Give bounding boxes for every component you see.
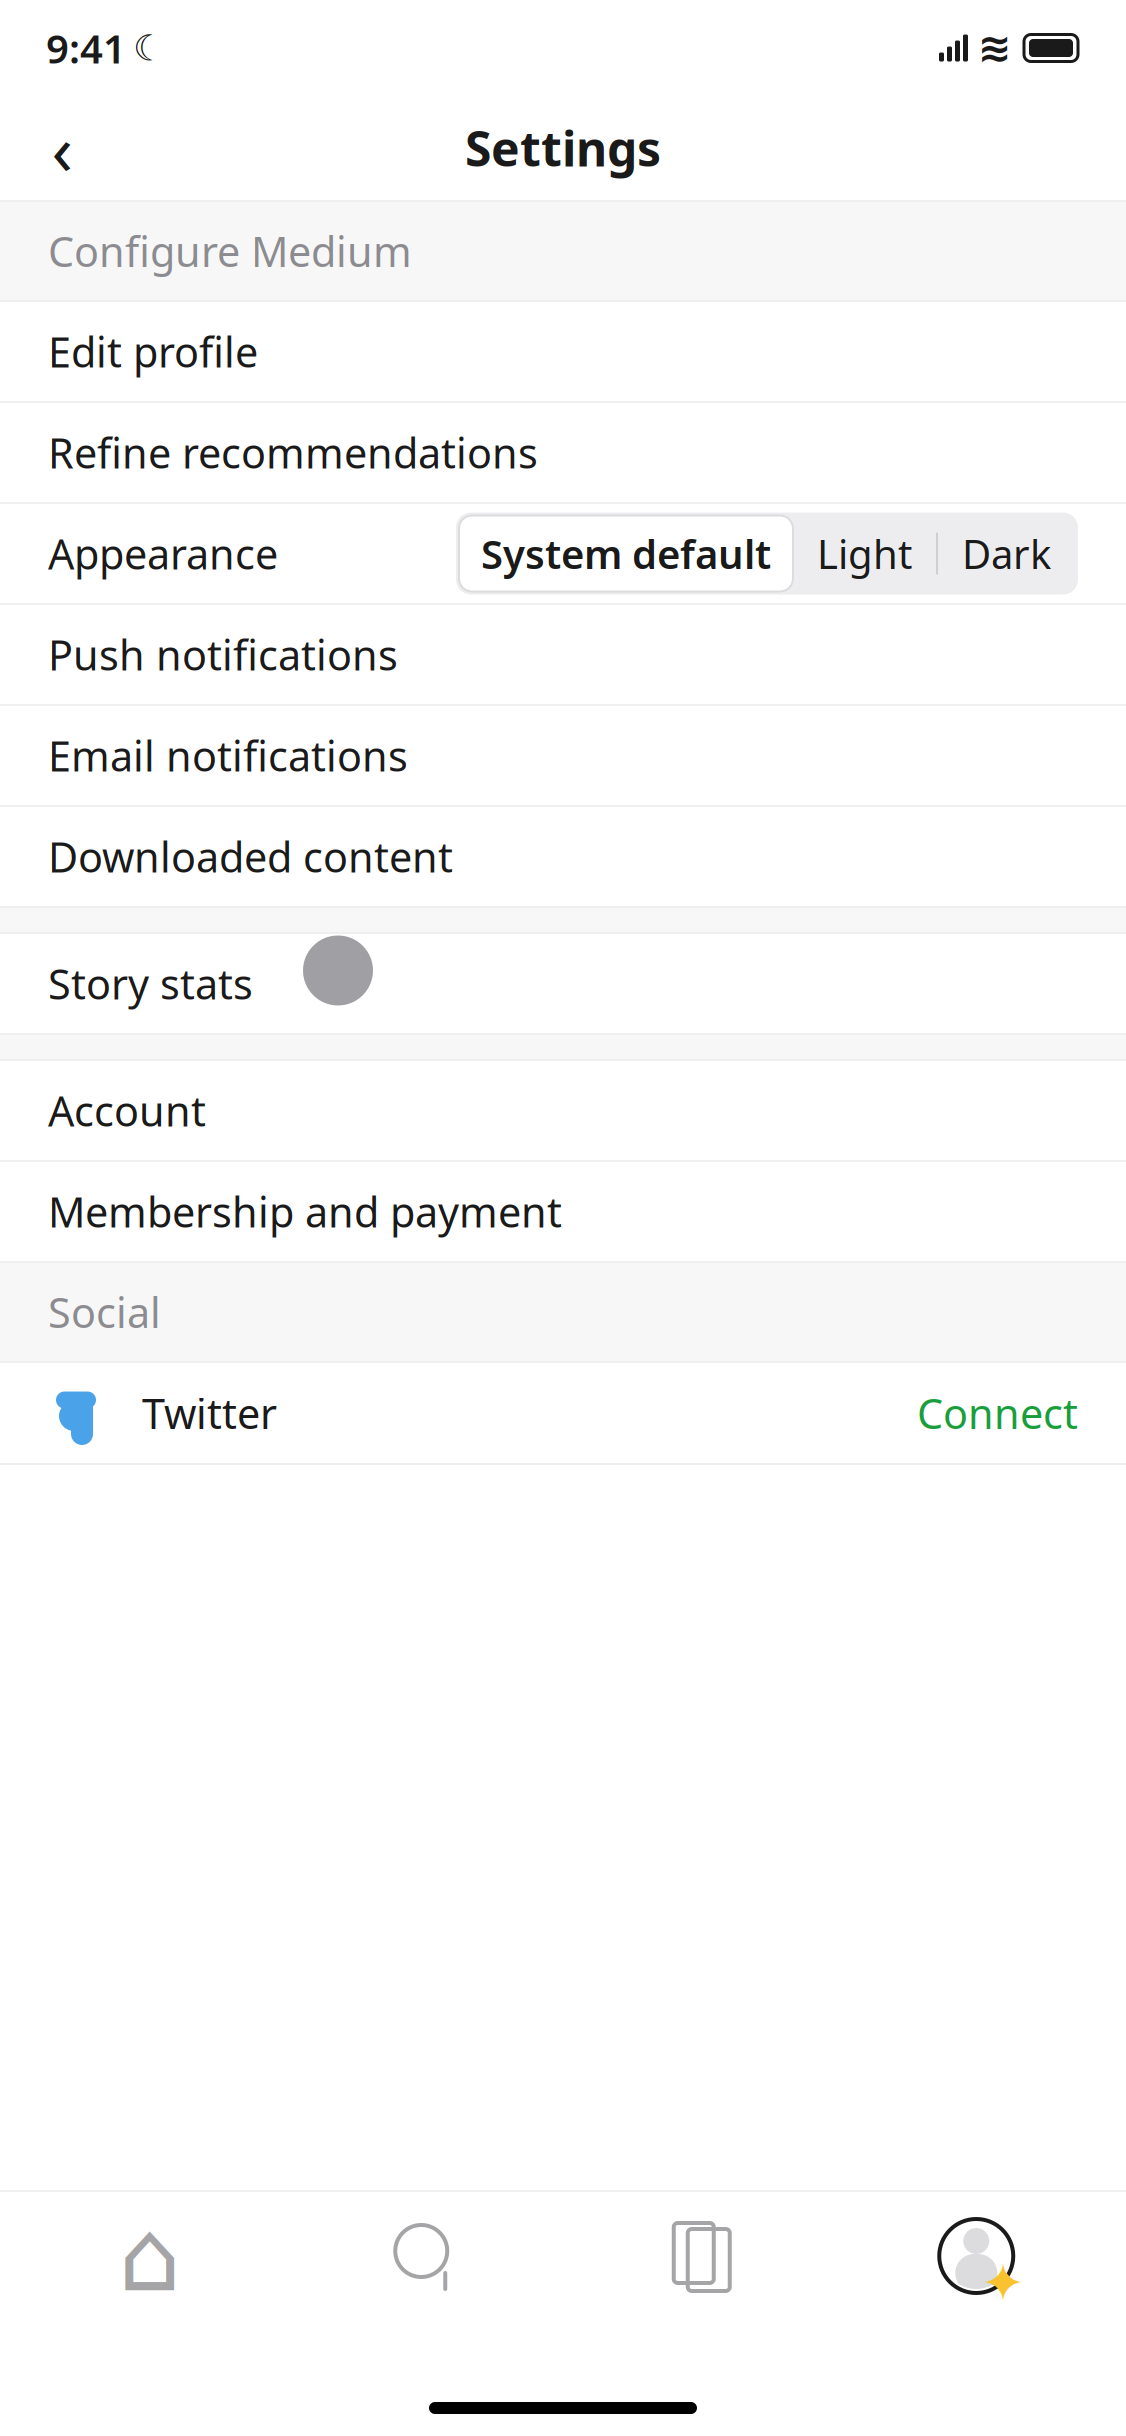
button[interactable]: Home: [12, 2217, 287, 2295]
staticText: Settings: [465, 116, 661, 180]
staticText: ☾: [133, 28, 165, 68]
staticText: Push notifications: [48, 627, 398, 682]
staticText: Twitter: [142, 1386, 277, 1440]
staticText: Edit profile: [48, 324, 258, 379]
staticText: Dark: [962, 527, 1051, 580]
staticText: ✦: [981, 2253, 1026, 2313]
button[interactable]: Search: [287, 2217, 563, 2295]
staticText: 9:41: [46, 21, 126, 74]
staticText: Light: [817, 527, 912, 580]
staticText: Email notifications: [48, 728, 408, 783]
button[interactable]: Story stats: [0, 934, 1126, 1033]
staticText: Configure Medium: [48, 224, 412, 278]
staticText: Social: [48, 1285, 161, 1339]
button[interactable]: Refine recommendations: [0, 403, 1126, 502]
staticText: Account: [48, 1083, 206, 1138]
staticText: System default: [481, 527, 771, 580]
button[interactable]: Edit profile: [0, 302, 1126, 401]
button[interactable]: Bookmarks: [563, 2217, 838, 2295]
staticText: Downloaded content: [48, 829, 453, 884]
staticText: Membership and payment: [48, 1184, 562, 1239]
button[interactable]: System default: [456, 512, 1078, 594]
staticText: ≋: [978, 25, 1012, 71]
button[interactable]: Twitter: [0, 1363, 1126, 1463]
button[interactable]: Profile: [838, 2213, 1114, 2299]
staticText: Refine recommendations: [48, 425, 538, 480]
button[interactable]: Push notifications: [0, 605, 1126, 704]
staticText: ‹: [51, 102, 72, 194]
button[interactable]: Email notifications: [0, 706, 1126, 805]
staticText: Connect: [917, 1386, 1078, 1440]
button[interactable]: Back: [20, 106, 104, 190]
button[interactable]: Downloaded content: [0, 807, 1126, 906]
staticText: Appearance: [48, 526, 278, 581]
button[interactable]: Account: [0, 1061, 1126, 1160]
button[interactable]: Membership and payment: [0, 1162, 1126, 1261]
staticText: Story stats: [48, 956, 253, 1011]
staticText: ⌂: [118, 2200, 181, 2312]
